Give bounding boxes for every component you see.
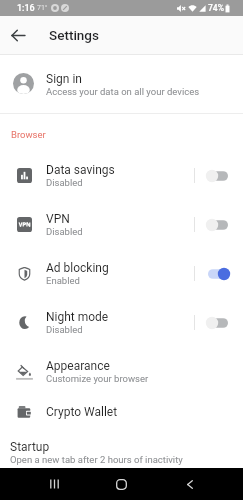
staticText: Night mode: [46, 310, 109, 324]
button[interactable]: Home: [101, 468, 142, 500]
staticText: VPN: [46, 212, 70, 226]
staticText: Appearance: [46, 359, 110, 373]
staticText: Sign in: [46, 72, 82, 86]
staticText: Access your data on all your devices: [46, 86, 200, 97]
staticText: 1:16: [17, 3, 35, 14]
button[interactable]: VPN: [0, 200, 243, 249]
button[interactable]: Crypto Wallet: [0, 388, 243, 437]
staticText: Settings: [49, 27, 99, 43]
button[interactable]: Navigate up: [7, 24, 30, 47]
staticText: Customize your browser: [46, 373, 149, 384]
staticText: 74%: [208, 3, 224, 13]
staticText: Data savings: [46, 163, 115, 177]
button[interactable]: Night mode: [0, 298, 243, 347]
staticText: Browser: [11, 129, 46, 140]
button[interactable]: VPN toggle: [200, 200, 243, 249]
staticText: 71°: [37, 4, 48, 12]
button[interactable]: Recent apps: [34, 468, 75, 500]
button[interactable]: Startup: [0, 434, 243, 468]
button[interactable]: Back: [169, 468, 210, 500]
staticText: Enabled: [46, 275, 80, 286]
button[interactable]: Sign in: [0, 56, 243, 113]
staticText: Disabled: [46, 226, 83, 237]
staticText: Open a new tab after 2 hours of inactivi…: [10, 454, 183, 465]
button[interactable]: Appearance: [0, 347, 243, 396]
button[interactable]: Data savings: [0, 151, 243, 200]
staticText: Disabled: [46, 177, 83, 188]
button[interactable]: Night mode toggle: [200, 298, 243, 347]
staticText: Crypto Wallet: [46, 405, 118, 419]
button[interactable]: Ad blocking: [0, 249, 243, 298]
staticText: Startup: [10, 440, 50, 454]
button[interactable]: Ad blocking toggle: [200, 249, 243, 298]
staticText: Disabled: [46, 324, 83, 335]
button[interactable]: Data savings toggle: [200, 151, 243, 200]
staticText: Ad blocking: [46, 261, 109, 275]
